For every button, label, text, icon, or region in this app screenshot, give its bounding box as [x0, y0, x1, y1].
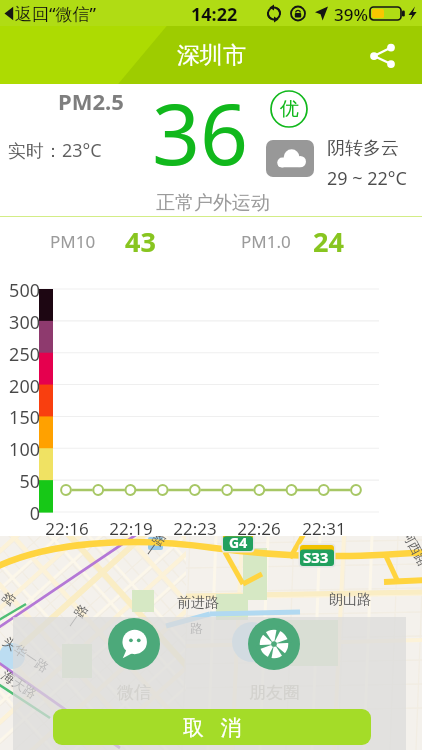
staticText: 实时：23°C [8, 138, 102, 163]
staticText: 14:22 [191, 2, 238, 27]
staticText: 500 [0, 278, 40, 303]
staticText: PM1.0 [241, 230, 291, 253]
staticText: 24 [313, 223, 344, 260]
staticText: 29 ~ 22°C [327, 166, 407, 191]
staticText: 路 [190, 620, 203, 636]
staticText: 取 消 [183, 713, 242, 742]
staticText: 深圳市 [177, 41, 246, 70]
staticText: 22:16 [38, 517, 96, 540]
staticText: 22:23 [166, 517, 224, 540]
button[interactable]: Share [362, 35, 402, 75]
staticText: 河西路 [399, 536, 422, 569]
staticText: 路 [0, 588, 19, 608]
button[interactable]: 朋友圈 [236, 618, 312, 703]
staticText: 50 [0, 469, 40, 494]
button[interactable]: PM1.0 [241, 223, 344, 260]
staticText: 22:19 [102, 517, 160, 540]
staticText: 36 [152, 75, 249, 189]
staticText: G4 [229, 536, 248, 552]
staticText: 返回“微信” [15, 2, 97, 25]
staticText: 朗山路 [329, 591, 371, 609]
staticText: 39% [334, 3, 368, 26]
staticText: 朋友圈 [249, 682, 300, 703]
staticText: 200 [0, 374, 40, 399]
staticText: 头华一路 [0, 633, 52, 675]
staticText: 300 [0, 310, 40, 335]
staticText: 优 [280, 97, 299, 121]
staticText: 正常户外运动 [156, 191, 270, 215]
staticText: 43 [125, 223, 156, 260]
staticText: 海天路 [0, 666, 40, 702]
staticText: 前进路 [177, 594, 219, 612]
staticText: 22:26 [230, 517, 288, 540]
staticText: 微信 [117, 682, 151, 703]
staticText: 一路 [141, 536, 169, 559]
staticText: 0 [0, 501, 40, 526]
staticText: PM10 [50, 230, 96, 253]
button[interactable]: PM10 [50, 223, 156, 260]
staticText: S33 [303, 547, 329, 567]
staticText: 100 [0, 437, 40, 462]
staticText: 22:31 [295, 517, 353, 540]
staticText: 一路 [63, 601, 91, 631]
button[interactable]: 取 消 [53, 709, 371, 745]
staticText: PM2.5 [58, 86, 124, 116]
staticText: 150 [0, 405, 40, 430]
button[interactable]: 微信 [96, 618, 172, 703]
staticText: 阴转多云 [327, 137, 399, 160]
staticText: 250 [0, 342, 40, 367]
